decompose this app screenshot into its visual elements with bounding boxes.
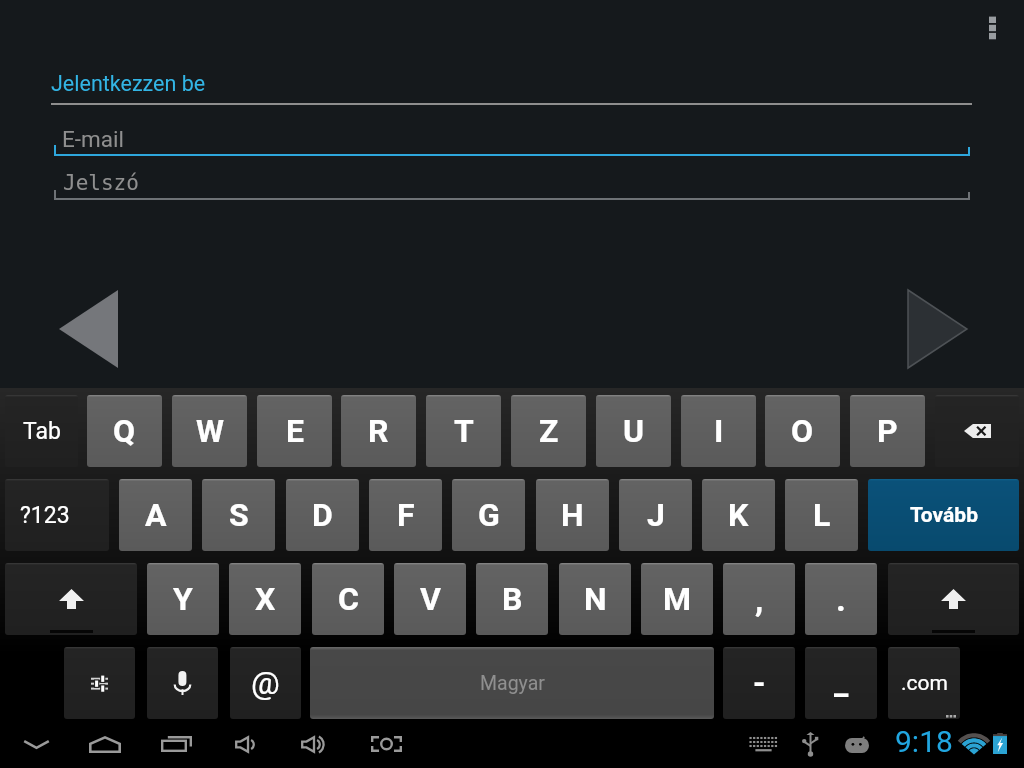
staticText: I (714, 412, 724, 450)
staticText: ?123 (20, 502, 70, 529)
button[interactable]: Tovább (868, 479, 1019, 551)
staticText: N (584, 580, 607, 618)
staticText: E (286, 412, 304, 450)
staticText: O (791, 412, 814, 450)
staticText: A (145, 496, 167, 534)
button[interactable]: . (805, 563, 877, 635)
button[interactable]: F (369, 479, 442, 551)
button[interactable]: K (702, 479, 775, 551)
button[interactable]: L (785, 479, 858, 551)
button[interactable]: Recent apps (152, 720, 200, 768)
staticText: G (478, 496, 500, 534)
button[interactable]: X (229, 563, 301, 635)
staticText: Y (173, 580, 193, 618)
staticText: F (397, 496, 415, 534)
button[interactable]: , (723, 563, 795, 635)
staticText: Q (113, 412, 136, 450)
button[interactable]: B (476, 563, 548, 635)
staticText: R (368, 412, 389, 450)
staticText: L (813, 496, 831, 534)
button[interactable]: T (426, 395, 501, 467)
button[interactable]: Next (879, 270, 996, 388)
staticText: 9:18 (895, 724, 953, 759)
staticText: W (196, 412, 224, 450)
button[interactable]: Keyboard settings (64, 647, 135, 719)
button[interactable]: More options (968, 0, 1016, 56)
button[interactable]: @ (230, 647, 301, 719)
button[interactable]: W (172, 395, 247, 467)
staticText: , (755, 579, 764, 619)
button[interactable]: R (341, 395, 416, 467)
staticText: Tab (23, 418, 61, 445)
staticText: X (255, 580, 276, 618)
staticText: J (647, 496, 665, 534)
button[interactable]: Backspace (935, 395, 1019, 467)
button[interactable]: H (536, 479, 609, 551)
staticText: - (753, 664, 766, 702)
button[interactable]: N (559, 563, 631, 635)
staticText: . (836, 579, 846, 619)
staticText: U (623, 412, 645, 450)
staticText: T (454, 412, 474, 450)
button[interactable]: Previous (30, 270, 146, 388)
button[interactable]: Y (147, 563, 219, 635)
button[interactable]: Shift (5, 563, 137, 635)
staticText: P (877, 412, 898, 450)
staticText: _ (834, 664, 849, 702)
button[interactable]: A (119, 479, 192, 551)
button[interactable]: J (619, 479, 692, 551)
button[interactable]: E (257, 395, 332, 467)
button[interactable]: I (681, 395, 756, 467)
button[interactable]: Back (12, 720, 60, 768)
staticText: Magyar (480, 672, 545, 695)
button[interactable]: ?123 (5, 479, 109, 551)
staticText: H (561, 496, 584, 534)
staticText: C (338, 580, 359, 618)
button[interactable]: Tab (5, 395, 78, 467)
staticText: E-mail (62, 126, 124, 152)
staticText: B (502, 580, 523, 618)
button[interactable]: _ (805, 647, 877, 719)
staticText: Tovább (910, 503, 978, 528)
staticText: D (312, 496, 333, 534)
staticText: Jelentkezzen be (51, 71, 206, 96)
button[interactable]: Voice input (147, 647, 218, 719)
button[interactable]: D (286, 479, 359, 551)
button[interactable]: V (394, 563, 466, 635)
button[interactable]: P (850, 395, 925, 467)
button[interactable]: - (723, 647, 795, 719)
button[interactable]: Keyboard (739, 720, 787, 768)
staticText: @ (251, 664, 280, 702)
staticText: V (420, 580, 441, 618)
button[interactable]: M (641, 563, 713, 635)
button[interactable]: Volume down (221, 720, 269, 768)
button[interactable]: S (202, 479, 275, 551)
button[interactable]: C (312, 563, 384, 635)
button[interactable]: O (765, 395, 840, 467)
button[interactable]: Volume up (290, 720, 338, 768)
button[interactable]: Magyar (310, 647, 714, 719)
staticText: M (663, 580, 692, 618)
button[interactable]: Home (81, 720, 129, 768)
staticText: .com (901, 671, 948, 696)
staticText: Jelszó (63, 171, 139, 195)
button[interactable]: .com (888, 647, 960, 719)
button[interactable]: Q (87, 395, 162, 467)
button[interactable]: Z (511, 395, 586, 467)
button[interactable]: Screenshot (362, 720, 410, 768)
staticText: Z (539, 412, 559, 450)
button[interactable]: U (596, 395, 671, 467)
button[interactable]: Shift right (888, 563, 1019, 635)
staticText: K (728, 496, 749, 534)
button[interactable]: G (452, 479, 525, 551)
staticText: S (229, 496, 249, 534)
